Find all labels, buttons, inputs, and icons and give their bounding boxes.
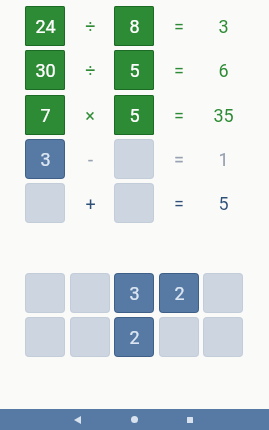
button[interactable]: 5 bbox=[115, 96, 153, 134]
button[interactable]: Back bbox=[52, 409, 102, 430]
staticText: 35 bbox=[213, 105, 234, 126]
staticText: = bbox=[174, 16, 184, 37]
staticText: 2 bbox=[174, 283, 185, 304]
staticText: = bbox=[174, 105, 184, 126]
staticText: × bbox=[85, 105, 95, 126]
button[interactable]: Home bbox=[109, 409, 159, 430]
staticText: 3 bbox=[218, 16, 229, 37]
staticText: 30 bbox=[35, 60, 56, 81]
staticText: 5 bbox=[129, 105, 140, 126]
staticText: 7 bbox=[40, 105, 51, 126]
button[interactable]: 30 bbox=[26, 51, 64, 89]
staticText: = bbox=[174, 193, 184, 214]
staticText: = bbox=[174, 60, 184, 81]
staticText: 3 bbox=[129, 283, 140, 304]
staticText: 2 bbox=[129, 327, 140, 348]
staticText: = bbox=[174, 149, 184, 170]
button[interactable]: 5 bbox=[115, 51, 153, 89]
button[interactable]: 8 bbox=[115, 7, 153, 45]
staticText: - bbox=[88, 149, 93, 170]
staticText: 8 bbox=[129, 16, 140, 37]
button[interactable]: 2 bbox=[115, 318, 153, 356]
staticText: 5 bbox=[129, 60, 140, 81]
staticText: 1 bbox=[218, 149, 229, 170]
staticText: 6 bbox=[218, 60, 229, 81]
staticText: 5 bbox=[218, 193, 229, 214]
staticText: 3 bbox=[40, 149, 51, 170]
staticText: + bbox=[85, 193, 96, 214]
button[interactable]: 2 bbox=[160, 274, 198, 312]
staticText: ÷ bbox=[85, 60, 96, 81]
button[interactable]: 3 bbox=[26, 140, 64, 178]
button[interactable]: 3 bbox=[115, 274, 153, 312]
button[interactable]: 7 bbox=[26, 96, 64, 134]
button[interactable]: Recent apps bbox=[165, 409, 215, 430]
staticText: 24 bbox=[35, 16, 56, 37]
staticText: ÷ bbox=[85, 16, 96, 37]
button[interactable]: 24 bbox=[26, 7, 64, 45]
